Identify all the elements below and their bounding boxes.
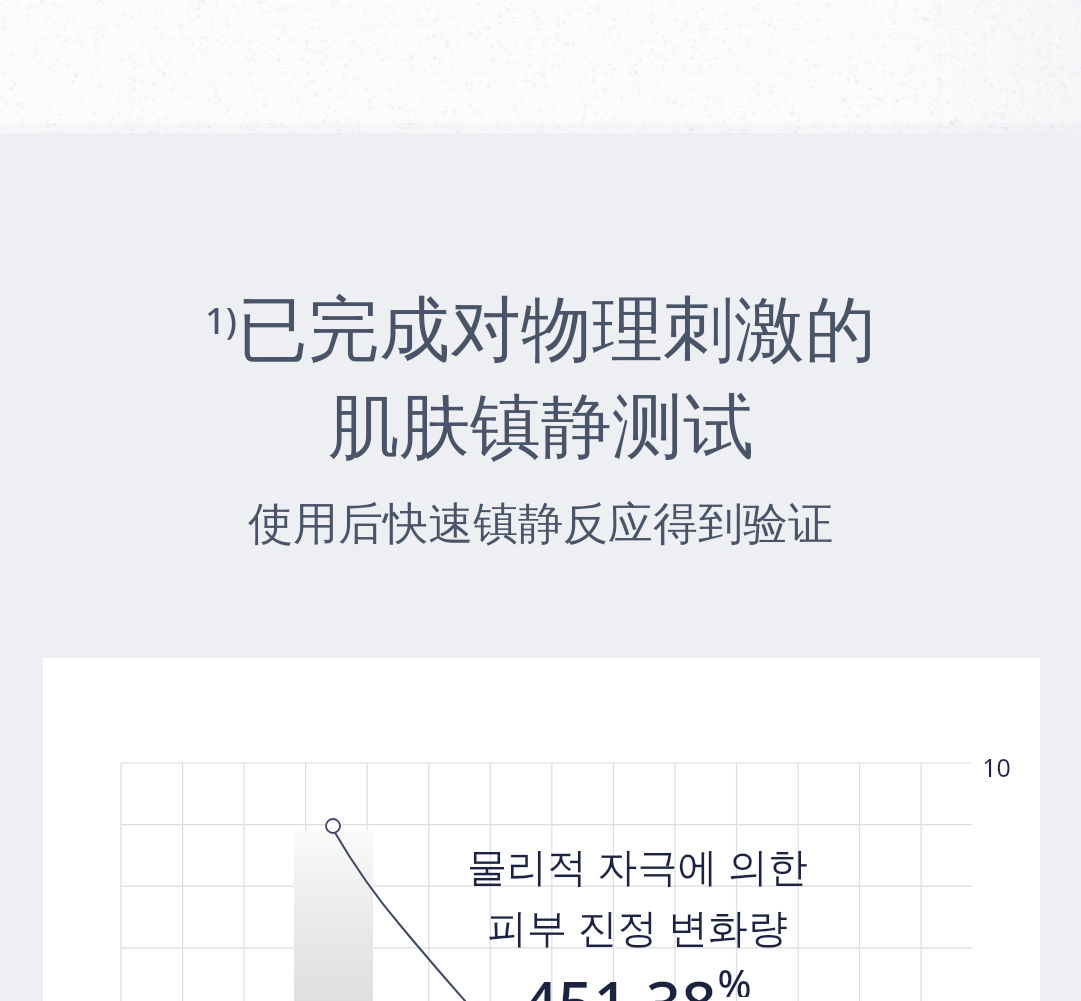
staticText: 肌肤镇静测试 — [328, 383, 754, 472]
button[interactable]: Axis value 10 — [982, 750, 1011, 784]
staticText: 使用后快速镇静反应得到验证 — [248, 496, 833, 553]
staticText: 물리적 자극에 의한 — [467, 838, 808, 893]
staticText: % — [717, 956, 752, 997]
staticText: 1) — [205, 296, 237, 345]
staticText: 피부 진정 변화량 — [487, 899, 788, 954]
staticText: 已完成对物理刺激的 — [237, 286, 876, 375]
button[interactable]: 1) — [0, 286, 1081, 553]
staticText: 451.38 — [522, 960, 717, 1001]
staticText: 10 — [982, 750, 1011, 784]
